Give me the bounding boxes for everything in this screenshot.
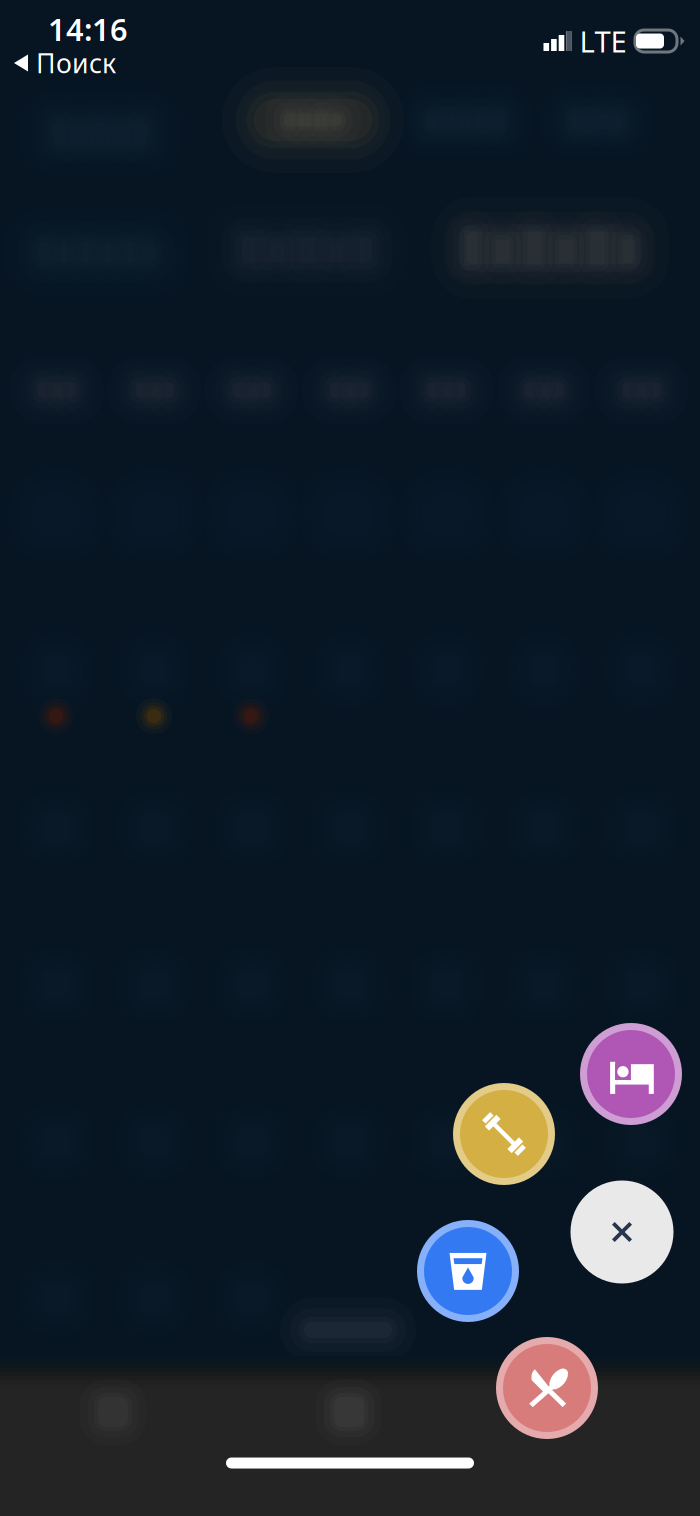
button[interactable]: Добавить приём пищи (496, 1337, 598, 1439)
staticText: LTE (579, 21, 626, 60)
button[interactable]: Добавить тренировку (453, 1083, 555, 1185)
staticText: 14:16 (48, 9, 128, 49)
button[interactable]: Закрыть (570, 1180, 673, 1283)
staticText: Поиск (36, 45, 116, 81)
button[interactable]: Добавить сон (580, 1023, 682, 1125)
button[interactable]: Добавить воду (417, 1220, 519, 1322)
